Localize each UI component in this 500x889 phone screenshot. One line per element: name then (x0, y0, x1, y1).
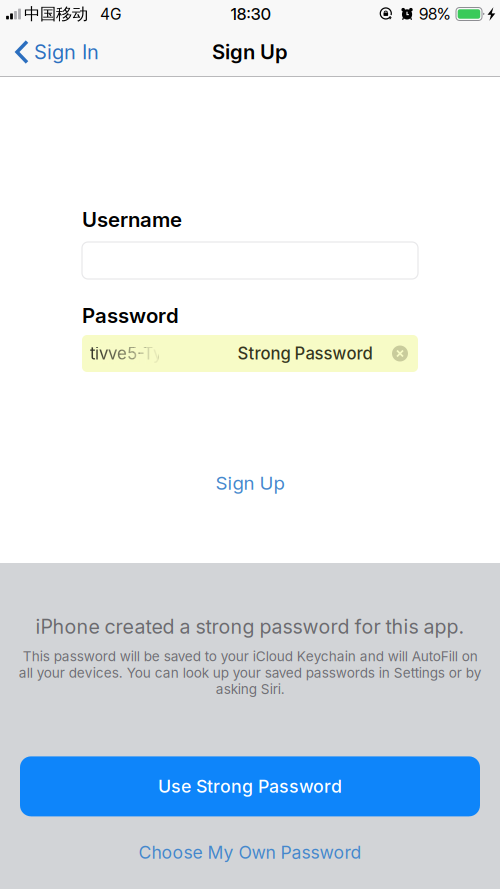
staticText: iPhone created a strong password for thi… (35, 615, 464, 638)
staticText: Username (82, 207, 182, 232)
staticText: 18:30 (231, 4, 271, 24)
button[interactable]: Sign In (0, 32, 109, 72)
button[interactable]: Choose My Own Password (138, 839, 361, 865)
button[interactable]: Use Strong Password (0, 756, 500, 816)
staticText: Choose My Own Password (138, 842, 361, 863)
staticText: 98% (419, 4, 451, 24)
staticText: 中国移动 (24, 4, 88, 24)
staticText: Sign Up (212, 40, 288, 64)
staticText: Strong Password (237, 343, 372, 364)
staticText: Sign In (34, 40, 99, 64)
staticText: Password (82, 303, 179, 328)
staticText: Use Strong Password (158, 776, 342, 797)
staticText: tivve5-Tykrok-ko (90, 343, 223, 364)
staticText: 4G (100, 5, 122, 23)
staticText: This password will be saved to your iClo… (18, 648, 481, 697)
button[interactable]: Sign Up (82, 468, 418, 498)
staticText: Sign Up (215, 472, 284, 494)
